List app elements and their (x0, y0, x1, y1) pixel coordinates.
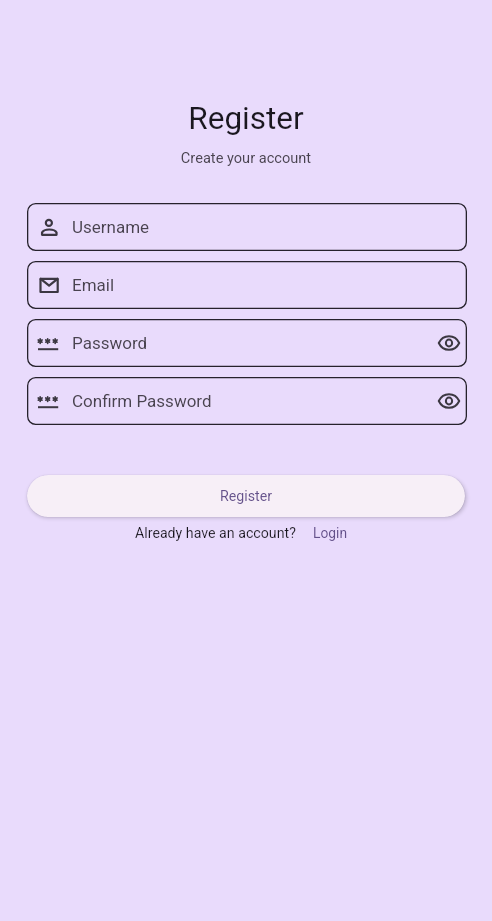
staticText: Register (0, 100, 492, 137)
button[interactable]: Register (27, 475, 465, 517)
staticText: Login (313, 525, 348, 541)
staticText: Username (72, 217, 150, 237)
button[interactable]: Username (27, 203, 467, 251)
button[interactable]: Email (27, 261, 467, 309)
button[interactable]: Password (27, 319, 467, 367)
staticText: Create your account (0, 149, 492, 166)
staticText: Email (72, 275, 115, 295)
button[interactable]: Confirm Password (27, 377, 467, 425)
button[interactable]: Show password (431, 325, 467, 361)
staticText: Already have an account? (135, 525, 296, 542)
staticText: Confirm Password (72, 391, 212, 411)
staticText: Password (72, 333, 148, 353)
button[interactable]: Show password (431, 383, 467, 419)
staticText: Register (220, 488, 272, 505)
button[interactable]: Login (303, 521, 358, 545)
